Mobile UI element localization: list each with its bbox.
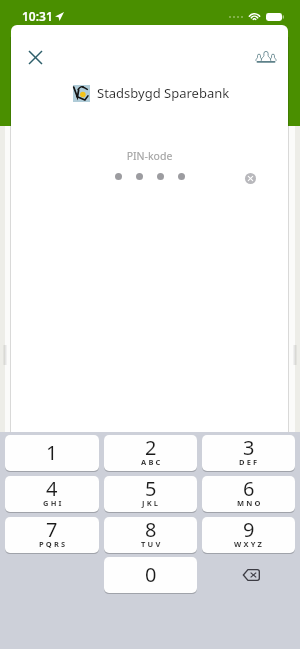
- staticText: DEF: [239, 457, 260, 467]
- staticText: WXYZ: [234, 539, 265, 549]
- staticText: GHI: [43, 498, 64, 508]
- staticText: 1: [46, 439, 58, 466]
- button[interactable]: 9: [202, 517, 295, 553]
- button[interactable]: 7: [5, 517, 99, 553]
- staticText: 10:31: [22, 8, 53, 24]
- staticText: 3: [243, 435, 255, 461]
- button[interactable]: 5: [104, 476, 197, 512]
- button[interactable]: 6: [202, 476, 295, 512]
- button[interactable]: 2: [104, 435, 197, 471]
- button[interactable]: 1: [5, 435, 99, 471]
- staticText: TUV: [141, 539, 163, 549]
- button[interactable]: 3: [202, 435, 295, 471]
- staticText: MNO: [237, 498, 263, 508]
- button[interactable]: 0: [104, 557, 197, 593]
- staticText: Stadsbygd Sparebank: [97, 84, 230, 102]
- button[interactable]: 4: [5, 476, 99, 512]
- staticText: 2: [145, 435, 157, 461]
- button[interactable]: Slett siffer: [202, 557, 295, 593]
- staticText: ABC: [141, 457, 163, 467]
- button[interactable]: Slett: [237, 165, 263, 191]
- staticText: 6: [243, 476, 255, 502]
- staticText: 8: [145, 517, 157, 543]
- staticText: JKL: [142, 498, 161, 508]
- button[interactable]: Brukere: [246, 37, 286, 77]
- staticText: 9: [243, 517, 255, 543]
- staticText: PIN-kode: [11, 149, 288, 163]
- staticText: 0: [145, 561, 157, 588]
- staticText: 5: [145, 476, 157, 502]
- staticText: 4: [46, 476, 58, 502]
- staticText: PQRS: [39, 539, 68, 549]
- button[interactable]: 8: [104, 517, 197, 553]
- staticText: 7: [46, 517, 58, 543]
- button[interactable]: Lukk: [18, 40, 52, 74]
